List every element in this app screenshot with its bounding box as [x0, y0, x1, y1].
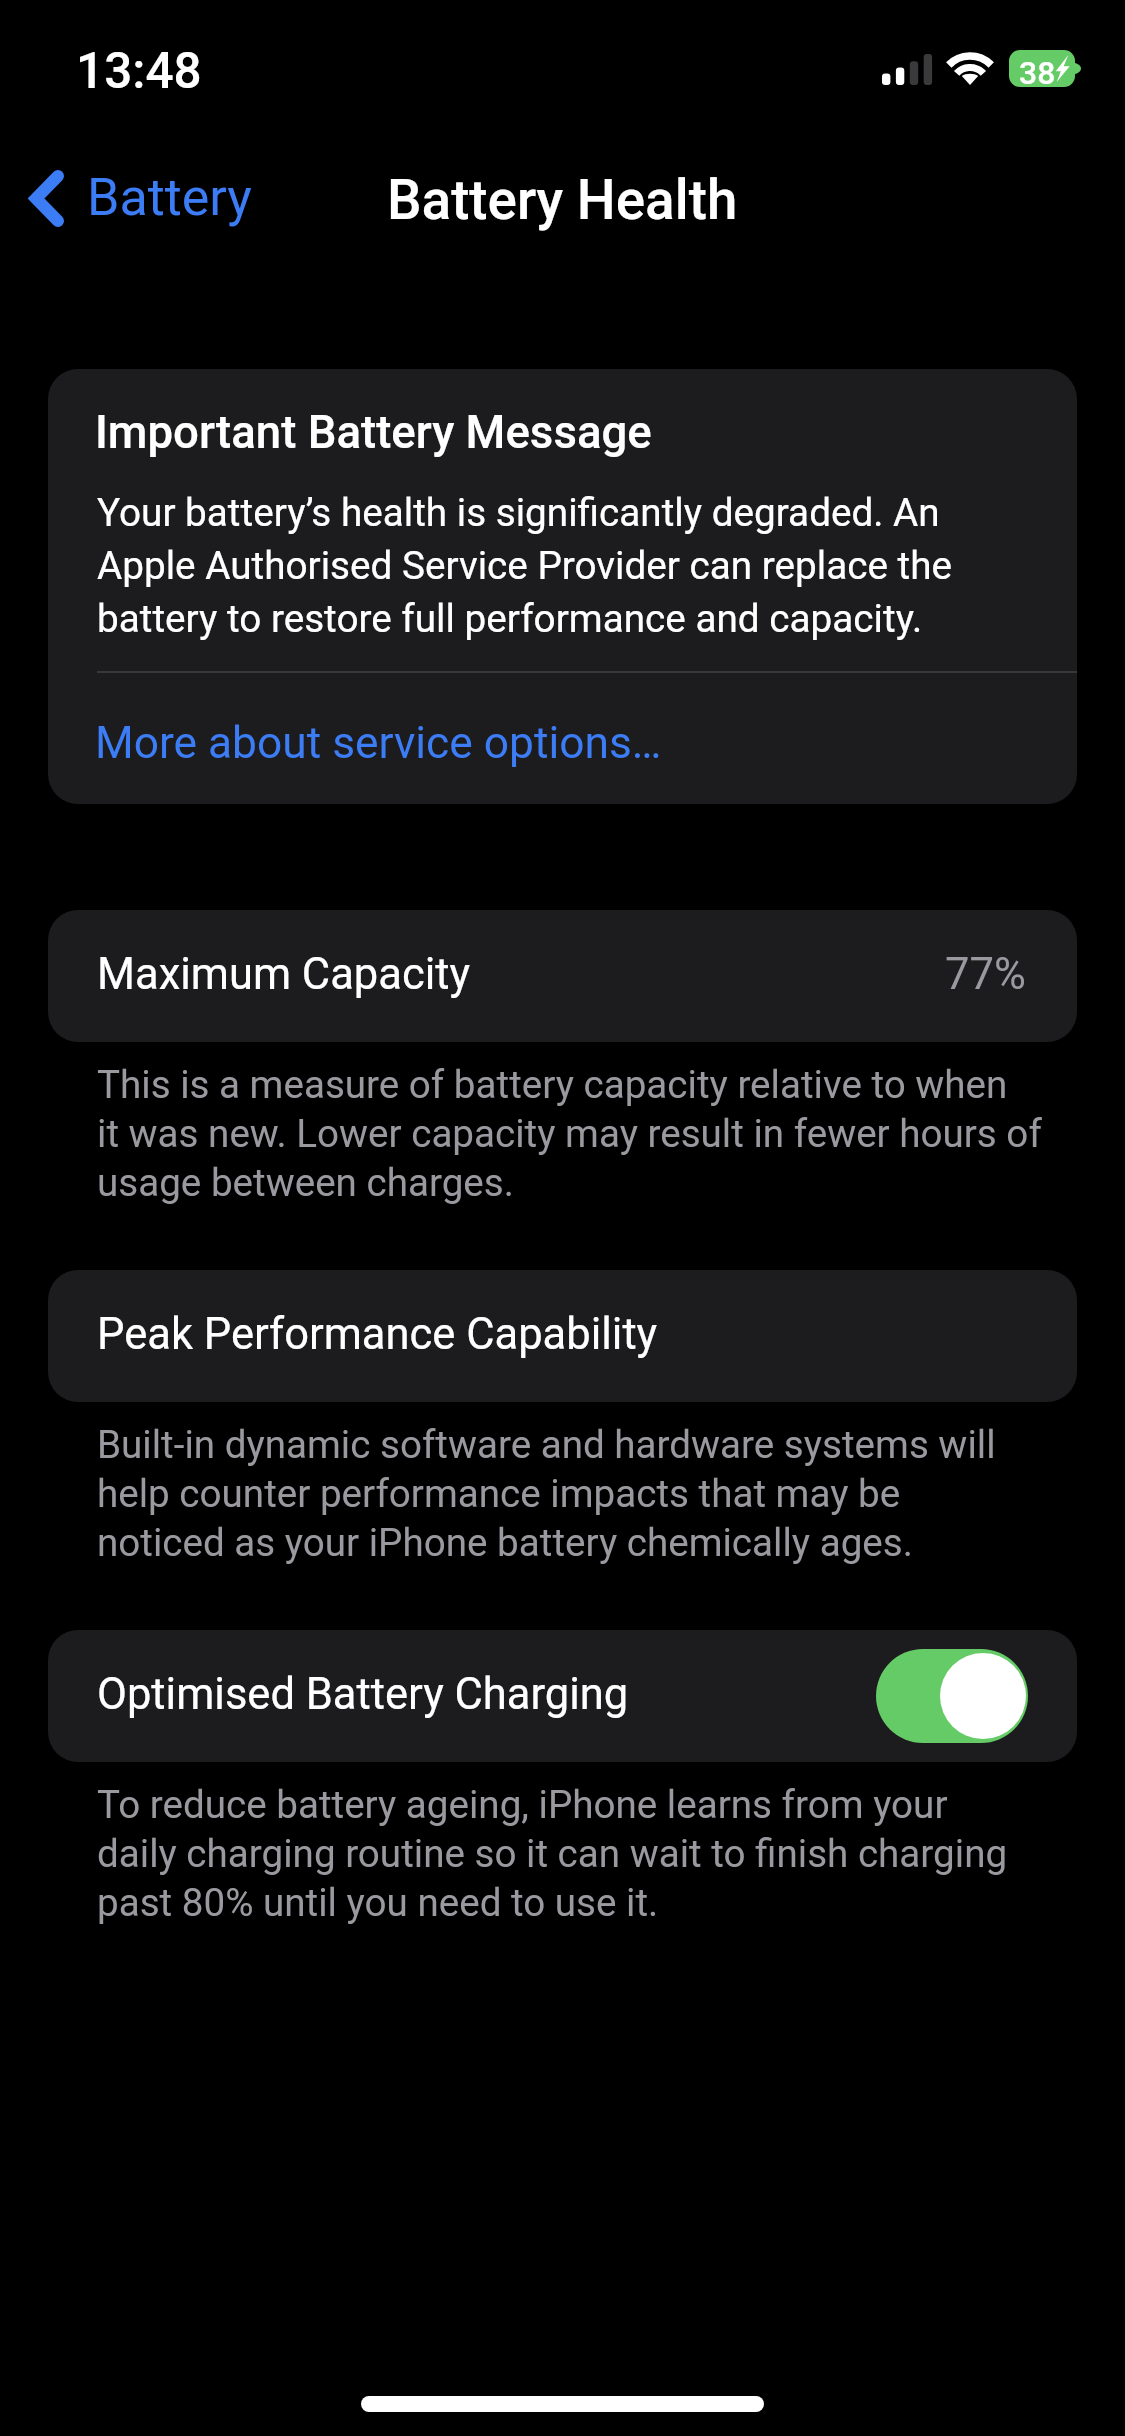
button[interactable]: Optimised Battery Charging — [48, 1630, 1077, 1762]
staticText: 77% — [945, 946, 1026, 1000]
other: Battery 38 percent, charging — [1009, 50, 1082, 87]
staticText: Optimised Battery Charging — [97, 1666, 629, 1720]
staticText: it was new. Lower capacity may result in… — [97, 1109, 1042, 1157]
staticText: Battery — [87, 164, 252, 229]
staticText: Your battery’s health is significantly d… — [97, 488, 940, 536]
staticText: usage between charges. — [97, 1158, 514, 1206]
other: Cellular signal — [882, 52, 933, 85]
staticText: help counter performance impacts that ma… — [97, 1469, 901, 1517]
staticText: Maximum Capacity — [97, 946, 471, 1000]
staticText: This is a measure of battery capacity re… — [97, 1060, 1008, 1108]
staticText: Built-in dynamic software and hardware s… — [97, 1420, 996, 1468]
other: Wi-Fi — [947, 51, 993, 85]
button[interactable]: Peak Performance Capability — [48, 1270, 1077, 1402]
button[interactable]: Optimised Battery Charging, on — [876, 1649, 1028, 1743]
button[interactable]: More about service options… — [48, 689, 1077, 804]
staticText: To reduce battery ageing, iPhone learns … — [97, 1780, 948, 1828]
staticText: past 80% until you need to use it. — [97, 1878, 659, 1926]
staticText: Apple Authorised Service Provider can re… — [97, 541, 953, 589]
staticText: Important Battery Message — [95, 403, 652, 460]
staticText: Peak Performance Capability — [97, 1306, 658, 1360]
button[interactable]: Back to Battery — [14, 158, 274, 239]
staticText: battery to restore full performance and … — [97, 594, 923, 642]
button[interactable]: Maximum Capacity — [48, 910, 1077, 1042]
staticText: More about service options… — [95, 714, 662, 769]
staticText: 38 — [1019, 52, 1056, 89]
staticText: 13:48 — [76, 39, 202, 101]
staticText: Battery Health — [387, 165, 738, 233]
staticText: daily charging routine so it can wait to… — [97, 1829, 1008, 1877]
staticText: noticed as your iPhone battery chemicall… — [97, 1518, 913, 1566]
